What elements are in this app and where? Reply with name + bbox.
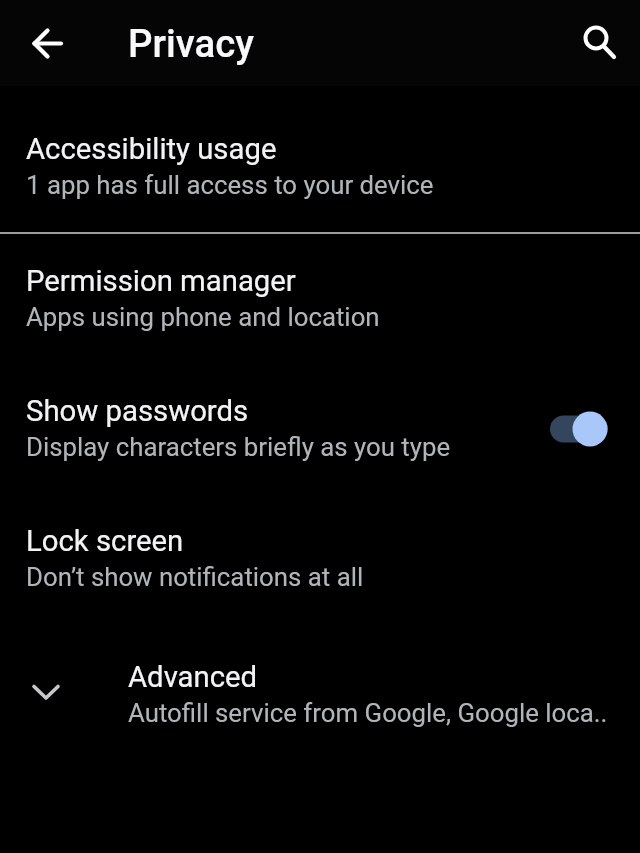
button[interactable] <box>578 21 622 65</box>
staticText: Accessibility usage <box>26 132 277 166</box>
button[interactable]: Show passwords <box>0 364 640 494</box>
staticText: Permission manager <box>26 264 296 298</box>
staticText: Show passwords <box>26 394 249 428</box>
button[interactable]: Accessibility usage <box>0 102 640 232</box>
button[interactable] <box>25 21 69 65</box>
staticText: Lock screen <box>26 524 184 558</box>
staticText: Autofill service from Google, Google loc… <box>128 698 608 728</box>
button[interactable]: Lock screen <box>0 494 640 624</box>
staticText: Privacy <box>128 21 254 66</box>
staticText: Advanced <box>128 660 258 694</box>
staticText: Display characters briefly as you type <box>26 432 451 462</box>
button[interactable]: Permission manager <box>0 234 640 364</box>
staticText: 1 app has full access to your device <box>26 170 434 200</box>
staticText: Don’t show notifications at all <box>26 562 364 592</box>
staticText: Apps using phone and location <box>26 302 380 332</box>
button[interactable]: Advanced <box>0 624 640 754</box>
